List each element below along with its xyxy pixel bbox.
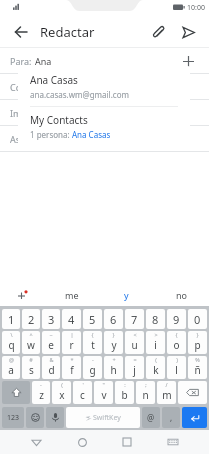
button[interactable]: ( <box>146 356 165 379</box>
staticText: * <box>70 356 74 363</box>
staticText: b <box>121 388 128 402</box>
button[interactable]: me <box>44 284 99 306</box>
button[interactable]: \ <box>2 331 20 354</box>
button[interactable]: @ <box>2 356 20 379</box>
staticText: ana.casas.wm@gmail.com <box>30 89 129 100</box>
staticText: o <box>173 338 180 352</box>
button[interactable]: + <box>104 356 123 379</box>
button[interactable]: * <box>62 356 81 379</box>
staticText: ; <box>145 381 147 388</box>
staticText: me <box>65 289 79 301</box>
staticText: q <box>8 338 15 352</box>
button[interactable]: 5 <box>83 309 102 329</box>
staticText: r <box>69 338 74 352</box>
staticText: % <box>195 356 200 363</box>
button[interactable]: Voice input <box>46 407 64 428</box>
staticText: v <box>101 388 107 402</box>
button[interactable]: - <box>32 381 50 404</box>
button[interactable]: ; <box>136 381 155 404</box>
button[interactable]: no <box>154 284 209 306</box>
button[interactable]: > <box>146 331 165 354</box>
button[interactable]: 4 <box>62 309 81 329</box>
button[interactable]: My Contacts <box>18 107 190 147</box>
staticText: ñ <box>194 363 201 377</box>
button[interactable]: Send <box>175 19 201 45</box>
staticText: l <box>175 363 178 377</box>
staticText: + <box>112 356 116 363</box>
staticText: d <box>48 363 55 377</box>
button[interactable]: y <box>99 284 154 306</box>
staticText: 3 <box>48 312 55 327</box>
button[interactable]: Space <box>66 407 140 428</box>
button[interactable]: & <box>42 356 60 379</box>
button[interactable]: = <box>125 356 144 379</box>
staticText: < <box>133 331 137 338</box>
staticText: > <box>154 331 158 338</box>
button[interactable]: Add contact <box>177 50 199 72</box>
button[interactable]: Recents <box>117 432 137 452</box>
button[interactable]: } <box>188 331 207 354</box>
button[interactable]: # <box>22 356 40 379</box>
staticText: u <box>131 338 138 352</box>
button[interactable]: " <box>94 381 113 404</box>
button[interactable]: ^ <box>22 331 40 354</box>
staticText: Redactar <box>40 23 95 41</box>
button[interactable]: { <box>167 331 186 354</box>
button[interactable]: 6 <box>104 309 123 329</box>
button[interactable]: < <box>125 331 144 354</box>
button[interactable]: , <box>162 407 180 428</box>
button[interactable]: Emoji <box>26 407 44 428</box>
button[interactable]: Home <box>72 432 92 452</box>
button[interactable]: Cc: <box>0 74 209 100</box>
staticText: no <box>176 289 188 301</box>
button[interactable]: Hide keyboard <box>163 432 183 452</box>
staticText: Para: <box>10 55 32 67</box>
button[interactable]: 2 <box>22 309 40 329</box>
button[interactable]: Back <box>26 432 46 452</box>
staticText: c <box>80 388 85 402</box>
button[interactable]: 8 <box>146 309 165 329</box>
button[interactable]: 9 <box>167 309 186 329</box>
staticText: @ <box>9 356 14 363</box>
staticText: 5 <box>89 312 96 327</box>
button[interactable]: : <box>115 381 134 404</box>
button[interactable]: Shift <box>2 381 30 404</box>
button[interactable]: Ana Casas <box>18 66 190 147</box>
button[interactable]: 1 <box>2 309 20 329</box>
staticText: w <box>27 338 35 352</box>
button[interactable]: - <box>83 356 102 379</box>
button[interactable]: Back <box>8 19 34 45</box>
button[interactable]: | <box>62 331 81 354</box>
button[interactable]: ' <box>73 381 92 404</box>
button[interactable]: Backspace <box>178 381 207 404</box>
button[interactable]: Add word <box>0 284 44 306</box>
staticText: SwiftKey <box>93 413 121 423</box>
staticText: - <box>40 381 42 388</box>
button[interactable]: } <box>104 331 123 354</box>
button[interactable]: / <box>157 381 176 404</box>
button[interactable]: 3 <box>42 309 60 329</box>
staticText: Im: <box>10 107 24 119</box>
button[interactable]: 7 <box>125 309 144 329</box>
button[interactable]: Im: <box>0 100 209 126</box>
staticText: \ <box>10 331 13 338</box>
button[interactable]: ) <box>167 356 186 379</box>
staticText: 123 <box>7 413 20 423</box>
staticText: ( <box>61 381 63 388</box>
button[interactable]: Enter <box>182 407 207 428</box>
staticText: & <box>49 356 54 363</box>
staticText: h <box>110 363 117 377</box>
button[interactable]: 123 <box>2 407 24 428</box>
button[interactable]: 0 <box>188 309 207 329</box>
button[interactable]: @ <box>142 407 160 428</box>
button[interactable]: % <box>188 356 207 379</box>
staticText: 0 <box>194 312 201 327</box>
button[interactable]: Attach <box>145 19 171 45</box>
button[interactable]: ( <box>52 381 71 404</box>
button[interactable]: Asunto: <box>0 126 209 152</box>
button[interactable]: { <box>83 331 102 354</box>
staticText: Asunto: <box>10 133 43 145</box>
button[interactable]: Ana Casas <box>18 66 190 106</box>
button[interactable]: Para: <box>0 48 209 74</box>
button[interactable]: ~ <box>42 331 60 354</box>
